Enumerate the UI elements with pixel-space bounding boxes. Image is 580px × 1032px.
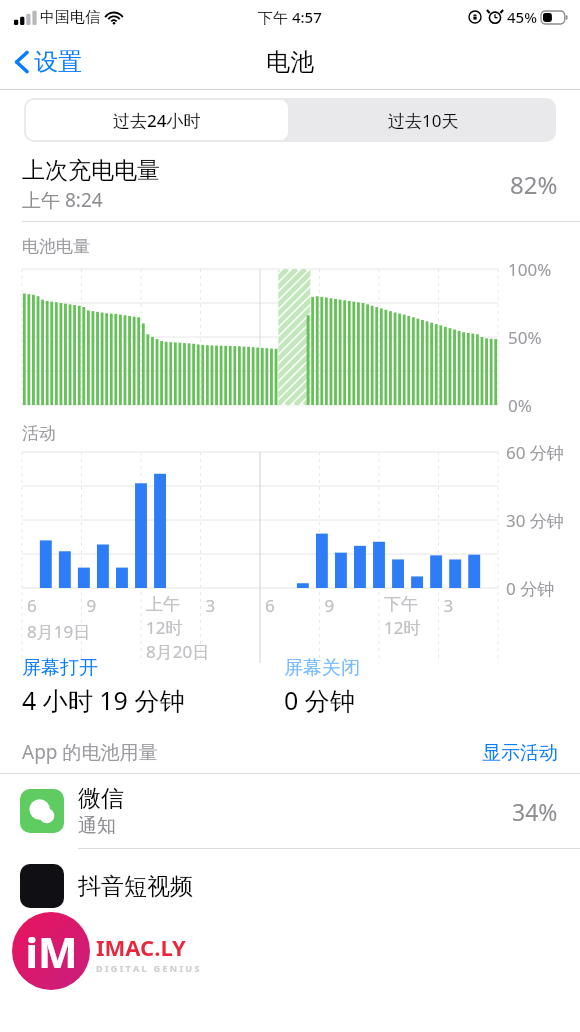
staticText: 0 分钟 xyxy=(284,683,355,717)
button[interactable]: 上次充电电量 xyxy=(22,156,558,213)
staticText: 上午 8:24 xyxy=(22,187,103,213)
staticText: 45% xyxy=(507,7,537,27)
staticText: 通知 xyxy=(78,814,116,838)
button[interactable]: 显示活动 xyxy=(482,741,558,765)
button[interactable]: 设置 xyxy=(8,43,88,81)
staticText: 设置 xyxy=(34,47,82,77)
staticText: 34% xyxy=(512,796,558,827)
button[interactable]: 过去24小时 xyxy=(26,100,288,140)
staticText: 屏幕打开 xyxy=(22,656,98,680)
staticText: 电池电量 xyxy=(22,236,90,257)
staticText: D I G I T A L G E N I U S xyxy=(96,962,200,974)
staticText: 活动 xyxy=(22,423,56,444)
button[interactable]: 过去10天 xyxy=(290,98,556,142)
button[interactable]: 抖音短视频 xyxy=(0,849,580,923)
staticText: 过去24小时 xyxy=(113,109,201,132)
staticText: 82% xyxy=(510,168,558,201)
staticText: 4 小时 19 分钟 xyxy=(22,683,185,717)
button[interactable]: 微信 xyxy=(0,774,580,848)
staticText: 过去10天 xyxy=(388,109,459,132)
staticText: App 的电池用量 xyxy=(22,739,158,765)
staticText: 微信 xyxy=(78,784,124,813)
staticText: 下午 4:57 xyxy=(258,7,322,27)
staticText: iM xyxy=(25,923,78,980)
staticText: 上次充电电量 xyxy=(22,156,160,185)
staticText: 电池 xyxy=(266,47,314,77)
staticText: 抖音短视频 xyxy=(78,872,193,901)
staticText: 显示活动 xyxy=(482,741,558,765)
staticText: IMAC.LY xyxy=(96,932,186,962)
staticText: 中国电信 xyxy=(40,8,100,27)
staticText: 屏幕关闭 xyxy=(284,656,360,680)
